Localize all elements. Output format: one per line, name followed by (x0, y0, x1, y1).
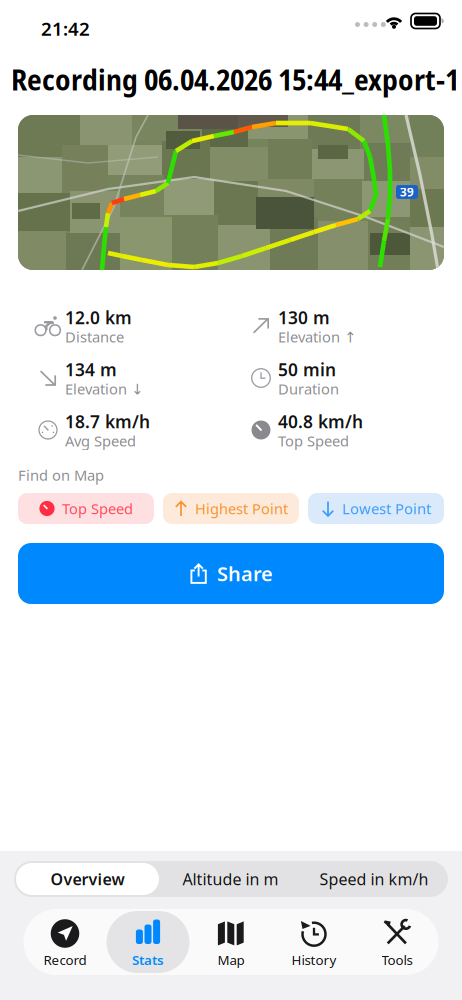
staticText: 39 (400, 184, 414, 200)
button[interactable]: Lowest Point (308, 493, 444, 524)
staticText: Map (217, 951, 244, 969)
button[interactable]: Altitude in m (159, 863, 302, 895)
button[interactable]: Overview (16, 863, 159, 895)
staticText: Find on Map (18, 465, 104, 485)
staticText: 18.7 km/h (65, 410, 150, 433)
button[interactable]: Map (189, 911, 272, 973)
button[interactable]: Speed in km/h (302, 863, 446, 895)
staticText: Record (43, 951, 86, 969)
button[interactable]: History (272, 911, 355, 973)
staticText: Elevation ↑ (278, 327, 356, 346)
button[interactable]: Record (23, 911, 106, 973)
button[interactable]: Share (18, 543, 444, 604)
button[interactable]: Highest Point (163, 493, 299, 524)
staticText: Duration (278, 379, 339, 398)
button[interactable]: Top Speed (18, 493, 154, 524)
staticText: Speed in km/h (319, 868, 428, 890)
button[interactable]: Stats (106, 911, 189, 973)
staticText: Stats (132, 951, 164, 969)
staticText: 134 m (65, 358, 117, 381)
staticText: Elevation ↓ (65, 379, 143, 398)
staticText: Recording 06.04.2026 15:44_export-1 (11, 59, 459, 99)
staticText: Distance (65, 327, 124, 346)
staticText: Avg Speed (65, 431, 136, 450)
staticText: 12.0 km (65, 306, 132, 329)
staticText: Overview (50, 868, 124, 890)
staticText: Top Speed (62, 499, 133, 518)
staticText: Lowest Point (342, 499, 431, 518)
staticText: Highest Point (195, 499, 288, 518)
staticText: 50 min (278, 358, 336, 381)
staticText: History (291, 951, 336, 969)
button[interactable]: Tools (355, 911, 438, 973)
staticText: Top Speed (278, 431, 349, 450)
staticText: Share (217, 560, 273, 587)
staticText: 21:42 (41, 16, 90, 41)
staticText: 130 m (278, 306, 330, 329)
staticText: 40.8 km/h (278, 410, 363, 433)
staticText: Tools (381, 951, 412, 969)
staticText: Altitude in m (182, 868, 278, 890)
